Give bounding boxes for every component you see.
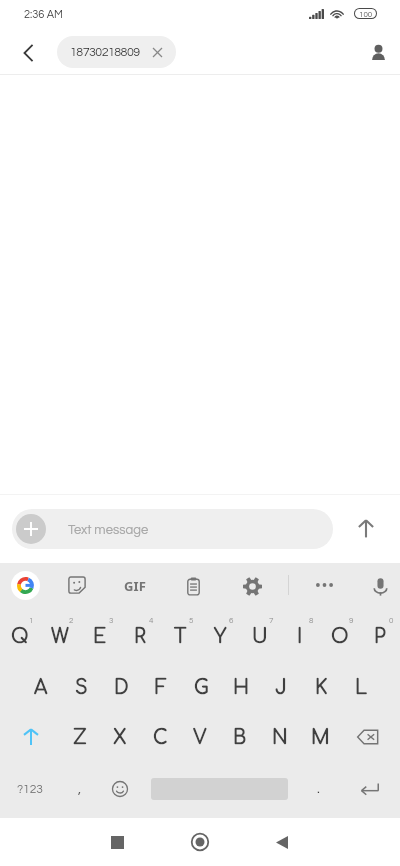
button[interactable]: Emoji — [100, 765, 140, 813]
button[interactable]: S — [61, 663, 101, 711]
staticText: 100 — [359, 10, 373, 18]
button[interactable]: J — [261, 663, 301, 711]
staticText: 9 — [349, 616, 354, 624]
button[interactable]: Keyboard action — [171, 562, 215, 610]
staticText: I — [297, 626, 303, 647]
staticText: A — [34, 677, 48, 698]
staticText: 7 — [269, 616, 274, 624]
button[interactable]: M — [300, 713, 340, 761]
staticText: F — [155, 677, 167, 698]
button[interactable]: G — [181, 663, 221, 711]
staticText: D — [114, 677, 129, 698]
button[interactable]: Home — [180, 822, 220, 862]
staticText: 0 — [389, 616, 394, 624]
button[interactable]: Keyboard action — [55, 561, 99, 609]
button[interactable]: D — [101, 663, 141, 711]
button[interactable]: Keyboard action — [358, 562, 400, 610]
staticText: P — [374, 626, 386, 647]
button[interactable]: Back — [262, 822, 302, 862]
staticText: Z — [73, 727, 87, 748]
button[interactable]: Backspace — [343, 713, 393, 761]
staticText: N — [272, 727, 288, 748]
button[interactable]: Send — [342, 504, 390, 552]
staticText: G — [194, 677, 209, 698]
button[interactable]: . — [298, 765, 338, 813]
staticText: K — [315, 677, 328, 698]
button[interactable]: B — [220, 713, 260, 761]
button[interactable]: V — [180, 713, 220, 761]
staticText: L — [355, 677, 368, 698]
staticText: M — [311, 727, 330, 748]
staticText: X — [113, 727, 127, 748]
staticText: . — [317, 782, 320, 796]
button[interactable]: Keyboard action — [230, 562, 274, 610]
button[interactable]: Add attachment — [16, 514, 46, 544]
button[interactable]: Back — [6, 31, 50, 75]
button[interactable]: Recents — [97, 822, 137, 862]
button[interactable]: Contact details — [356, 30, 400, 74]
button[interactable]: T — [160, 612, 200, 660]
staticText: W — [51, 626, 69, 647]
button[interactable]: X — [100, 713, 140, 761]
staticText: E — [93, 626, 107, 647]
staticText: S — [75, 677, 88, 698]
button[interactable]: F — [141, 663, 181, 711]
staticText: J — [275, 677, 287, 698]
staticText: 4 — [149, 616, 154, 624]
staticText: 6 — [229, 616, 234, 624]
staticText: 5 — [189, 616, 194, 624]
button[interactable]: L — [341, 663, 381, 711]
staticText: 2:36 AM — [24, 9, 63, 20]
staticText: R — [134, 626, 146, 647]
button[interactable]: Enter — [345, 765, 393, 813]
staticText: 1 — [29, 616, 34, 624]
staticText: 2 — [69, 616, 74, 624]
staticText: U — [252, 626, 268, 647]
button[interactable]: Z — [60, 713, 100, 761]
button[interactable]: K — [301, 663, 341, 711]
button[interactable]: Add attachment — [12, 509, 333, 549]
staticText: H — [233, 677, 250, 698]
staticText: , — [78, 782, 82, 796]
button[interactable]: A — [21, 663, 61, 711]
button[interactable]: Keyboard action — [113, 562, 157, 610]
staticText: B — [233, 727, 247, 748]
button[interactable]: P — [360, 612, 400, 660]
button[interactable]: N — [260, 713, 300, 761]
staticText: Text message — [68, 523, 149, 536]
button[interactable]: Keyboard action — [302, 561, 346, 609]
staticText: V — [193, 727, 207, 748]
staticText: T — [174, 626, 187, 647]
staticText: 8 — [309, 616, 314, 624]
button[interactable]: , — [60, 765, 100, 813]
button[interactable]: Q — [0, 612, 40, 660]
button[interactable]: E — [80, 612, 120, 660]
staticText: 3 — [109, 616, 114, 624]
button[interactable]: Shift — [6, 713, 56, 761]
button[interactable]: C — [140, 713, 180, 761]
button[interactable]: I — [280, 612, 320, 660]
button[interactable]: 18730218809 — [57, 36, 176, 68]
staticText: GIF — [124, 577, 147, 595]
button[interactable]: Y — [200, 612, 240, 660]
staticText: 18730218809 — [70, 46, 140, 59]
staticText: ?123 — [17, 783, 43, 795]
button[interactable]: H — [221, 663, 261, 711]
button[interactable]: U — [240, 612, 280, 660]
button[interactable]: W — [40, 612, 80, 660]
staticText: O — [331, 626, 349, 647]
button[interactable]: O — [320, 612, 360, 660]
button[interactable]: Keyboard action — [3, 561, 47, 609]
staticText: Q — [11, 626, 29, 647]
button[interactable]: R — [120, 612, 160, 660]
staticText: Y — [214, 626, 227, 647]
staticText: C — [153, 727, 168, 748]
button[interactable]: Space — [143, 765, 296, 813]
button[interactable]: ?123 — [5, 765, 55, 813]
